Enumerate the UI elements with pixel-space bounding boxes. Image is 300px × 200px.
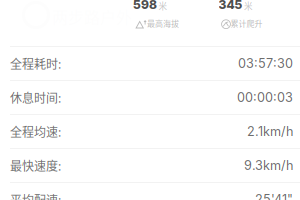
staticText: 米 (158, 0, 167, 12)
staticText: 00:00:03 (237, 90, 293, 105)
staticText: 米 (244, 0, 253, 12)
staticText: 休息时间: (10, 89, 61, 106)
staticText: 全程均速: (10, 123, 61, 140)
button[interactable]: 休息时间: (0, 80, 300, 114)
staticText: 03:57:30 (238, 56, 293, 71)
button[interactable]: 全程耗时: (0, 46, 300, 80)
staticText: 25'41" (255, 192, 293, 200)
staticText: 598 (133, 0, 157, 12)
button[interactable]: 最快速度: (0, 148, 300, 182)
staticText: 全程耗时: (10, 55, 61, 72)
button[interactable]: 平均配速: (0, 182, 300, 200)
staticText: 最快速度: (10, 157, 61, 174)
staticText: 2.1km/h (247, 124, 293, 139)
staticText: 最高海拔 (147, 17, 179, 29)
button[interactable]: 全程均速: (0, 114, 300, 148)
staticText: 9.3km/h (244, 158, 293, 173)
staticText: 345 (218, 0, 242, 12)
staticText: 平均配速: (10, 191, 61, 200)
staticText: 累计爬升 (230, 17, 262, 29)
